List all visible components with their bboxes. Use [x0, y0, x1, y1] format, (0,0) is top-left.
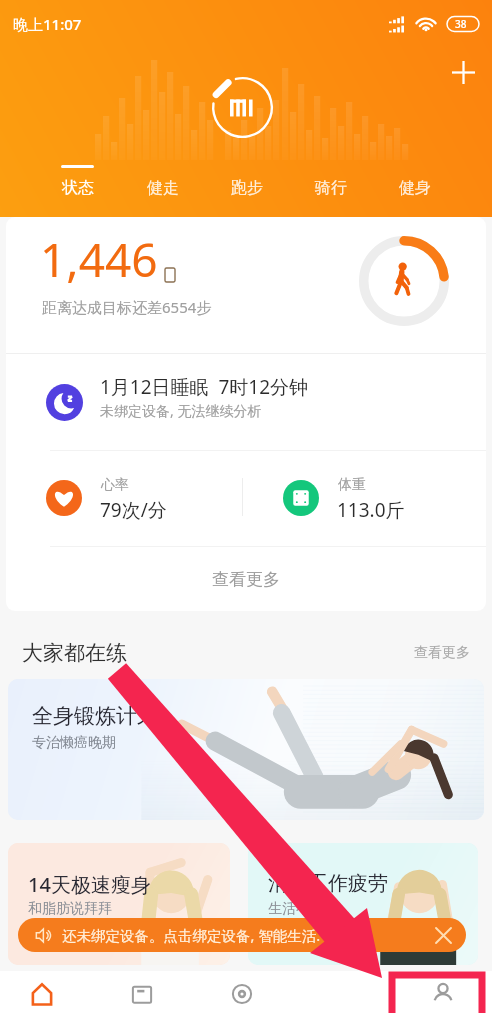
- staticText: 查看更多: [414, 644, 470, 662]
- staticText: 14天极速瘦身: [28, 871, 151, 898]
- staticText: 生活不停息: [268, 900, 338, 918]
- button[interactable]: Close: [426, 918, 460, 952]
- button[interactable]: 1,446: [6, 217, 486, 353]
- staticText: 晚上11:07: [13, 14, 82, 34]
- staticText: 专治懒癌晚期: [32, 734, 116, 752]
- staticText: 查看更多: [212, 569, 280, 590]
- button[interactable]: 1月12日睡眠 7时12分钟: [6, 354, 486, 450]
- button[interactable]: 心率: [6, 451, 242, 546]
- button[interactable]: 还未绑定设备。点击绑定设备, 智能生活.: [18, 918, 466, 952]
- staticText: 113.0斤: [337, 497, 405, 523]
- button[interactable]: Add device: [442, 51, 484, 93]
- button[interactable]: 消除工作疲劳: [248, 843, 478, 965]
- button[interactable]: 跑步: [205, 160, 289, 210]
- staticText: 38: [455, 17, 467, 31]
- button[interactable]: Courses: [104, 974, 179, 1013]
- staticText: 和脂肪说拜拜: [28, 900, 112, 918]
- staticText: 心率: [101, 476, 129, 494]
- button[interactable]: 健走: [120, 160, 205, 210]
- staticText: 全身锻炼计划: [32, 703, 158, 729]
- staticText: 消除工作疲劳: [268, 871, 388, 896]
- button[interactable]: 全身锻炼计划: [8, 679, 484, 820]
- button[interactable]: 体重: [243, 451, 486, 546]
- button[interactable]: 14天极速瘦身: [8, 843, 230, 965]
- staticText: 健身: [399, 178, 431, 198]
- button[interactable]: 查看更多: [414, 644, 470, 662]
- staticText: 大家都在练: [22, 640, 127, 666]
- button[interactable]: Profile: [405, 974, 480, 1013]
- staticText: 距离达成目标还差6554步: [42, 297, 212, 317]
- button[interactable]: Home: [4, 974, 79, 1013]
- button[interactable]: 查看更多: [6, 547, 486, 611]
- staticText: 跑步: [231, 178, 263, 198]
- staticText: 还未绑定设备。点击绑定设备, 智能生活.: [62, 925, 321, 945]
- staticText: 79次/分: [100, 497, 167, 523]
- button[interactable]: 骑行: [289, 160, 373, 210]
- staticText: 骑行: [315, 178, 347, 198]
- staticText: 未绑定设备, 无法继续分析: [100, 401, 262, 420]
- staticText: 状态: [62, 178, 94, 198]
- staticText: 1月12日睡眠 7时12分钟: [100, 374, 309, 400]
- staticText: 1,446: [40, 228, 158, 291]
- button[interactable]: 状态: [35, 160, 120, 210]
- button[interactable]: 健身: [373, 160, 457, 210]
- staticText: 健走: [147, 178, 179, 198]
- staticText: 体重: [338, 476, 366, 494]
- button[interactable]: Discover: [204, 974, 279, 1013]
